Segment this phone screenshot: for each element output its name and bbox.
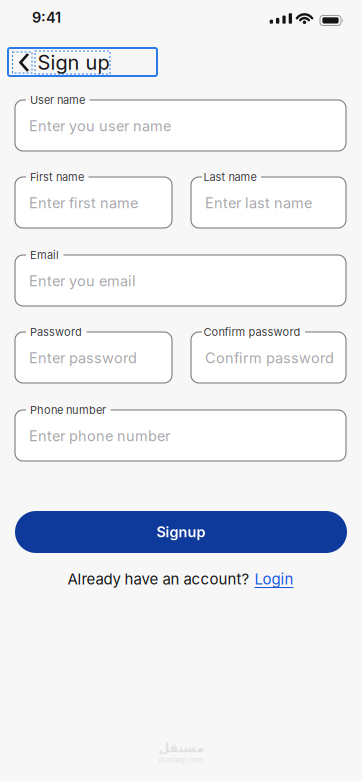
staticText: Enter phone number [29, 427, 170, 444]
button[interactable]: Confirm password [191, 332, 346, 383]
button[interactable]: Login [254, 570, 293, 588]
staticText: مستقل [158, 741, 204, 755]
staticText: Enter first name [29, 194, 138, 211]
staticText: User name [30, 93, 85, 106]
button[interactable]: Enter phone number [15, 410, 346, 461]
staticText: Login [254, 570, 293, 588]
staticText: Password [30, 325, 82, 338]
button[interactable]: Enter last name [191, 177, 346, 228]
button[interactable]: Enter first name [15, 177, 172, 228]
staticText: Already have an account? [67, 570, 249, 588]
staticText: Confirm password [203, 325, 300, 338]
staticText: Phone number [30, 403, 106, 416]
button[interactable]: Enter password [15, 332, 172, 383]
staticText: Confirm password [205, 349, 334, 366]
staticText: Signup [156, 523, 205, 540]
staticText: mostaql.com [158, 756, 203, 764]
button[interactable]: Back [12, 52, 32, 73]
staticText: Sign up [37, 51, 109, 74]
staticText: Enter last name [205, 194, 312, 211]
staticText: Enter password [29, 349, 137, 366]
staticText: First name [30, 170, 84, 183]
button[interactable]: Signup [15, 511, 347, 553]
staticText: Enter you user name [29, 117, 171, 134]
staticText: Enter you email [29, 272, 136, 289]
button[interactable]: Enter you user name [15, 100, 346, 151]
staticText: Last name [203, 170, 256, 183]
staticText: Email [30, 248, 59, 261]
button[interactable]: Enter you email [15, 255, 346, 306]
staticText: 9:41 [32, 9, 61, 26]
